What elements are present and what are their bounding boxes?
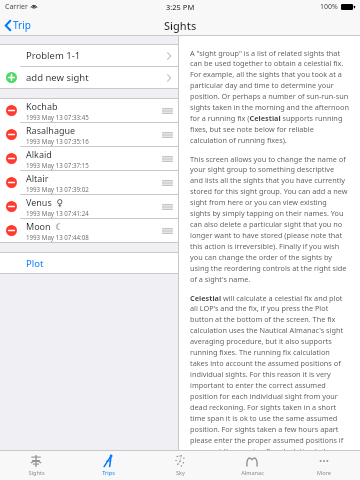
staticText: Venus ♀ (26, 196, 64, 208)
other: Delete Altair (6, 177, 17, 188)
button[interactable]: Delete Moon (0, 219, 178, 242)
other: Trips (101, 454, 115, 468)
staticText: Rasalhague (26, 124, 76, 136)
staticText: 1993 May 13 07:39:02 (26, 185, 89, 193)
staticText: 1993 May 13 07:41:24 (26, 209, 89, 217)
other: Reorder Rasalhague (162, 131, 173, 139)
button[interactable]: Sights (0, 451, 72, 480)
staticText: A "sight group" is a list of related sig… (190, 48, 349, 145)
button[interactable]: Delete Altair (0, 171, 178, 194)
button[interactable]: Delete Kochab (0, 99, 178, 122)
staticText: Sights (28, 469, 45, 477)
staticText: 100% (320, 2, 338, 12)
other: Delete Rasalhague (6, 129, 17, 140)
other: Reorder Altair (162, 179, 173, 187)
other: Reorder Moon (162, 227, 173, 235)
button[interactable]: Trip (0, 15, 39, 35)
staticText: This screen allows you to change the nam… (190, 154, 349, 284)
staticText: Trips (102, 469, 115, 477)
staticText: Problem 1-1 (26, 49, 81, 62)
staticText: Alkaid (26, 148, 52, 160)
staticText: Kochab (26, 100, 58, 112)
button[interactable]: Almanac (216, 451, 288, 480)
staticText: Moon ☾ (26, 220, 64, 232)
button[interactable]: Delete Venus (0, 195, 178, 218)
other: More (317, 454, 331, 468)
other: Almanac (245, 454, 259, 468)
staticText: Plot (26, 257, 44, 270)
other: Sights (29, 454, 43, 468)
staticText: 1993 May 13 07:33:45 (26, 113, 89, 121)
staticText: 1993 May 13 07:35:16 (26, 137, 89, 145)
button[interactable]: Delete Rasalhague (0, 123, 178, 146)
other: Reorder Alkaid (162, 155, 173, 163)
button[interactable]: Plot (0, 253, 178, 273)
other: Reorder Kochab (162, 107, 173, 115)
staticText: More (317, 469, 331, 477)
other: Delete Venus (6, 201, 17, 212)
button[interactable]: More (288, 451, 360, 480)
button[interactable]: Delete Alkaid (0, 147, 178, 170)
staticText: add new sight (26, 71, 89, 84)
staticText: Sky (176, 469, 185, 477)
button[interactable]: Problem 1-1 (0, 45, 178, 66)
other: Sky (173, 454, 187, 468)
staticText: 3:25 PM (166, 2, 195, 12)
button[interactable]: Trips (72, 451, 144, 480)
staticText: Carrier (5, 2, 28, 12)
staticText: Sights (164, 18, 197, 33)
staticText: Almanac (241, 469, 264, 477)
staticText: Trip (13, 18, 31, 32)
other: Delete Alkaid (6, 153, 17, 164)
staticText: Altair (26, 172, 49, 184)
other: Add new sight (6, 72, 17, 83)
button[interactable]: Add new sight (0, 67, 178, 88)
other: Reorder Venus (162, 203, 173, 211)
staticText: Celestial will calculate a celestial fix… (190, 293, 349, 450)
other: Delete Moon (6, 225, 17, 236)
staticText: 1993 May 13 07:37:15 (26, 161, 89, 169)
button[interactable]: Sky (144, 451, 216, 480)
staticText: 1993 May 13 07:44:08 (26, 233, 89, 241)
other: Delete Kochab (6, 105, 17, 116)
